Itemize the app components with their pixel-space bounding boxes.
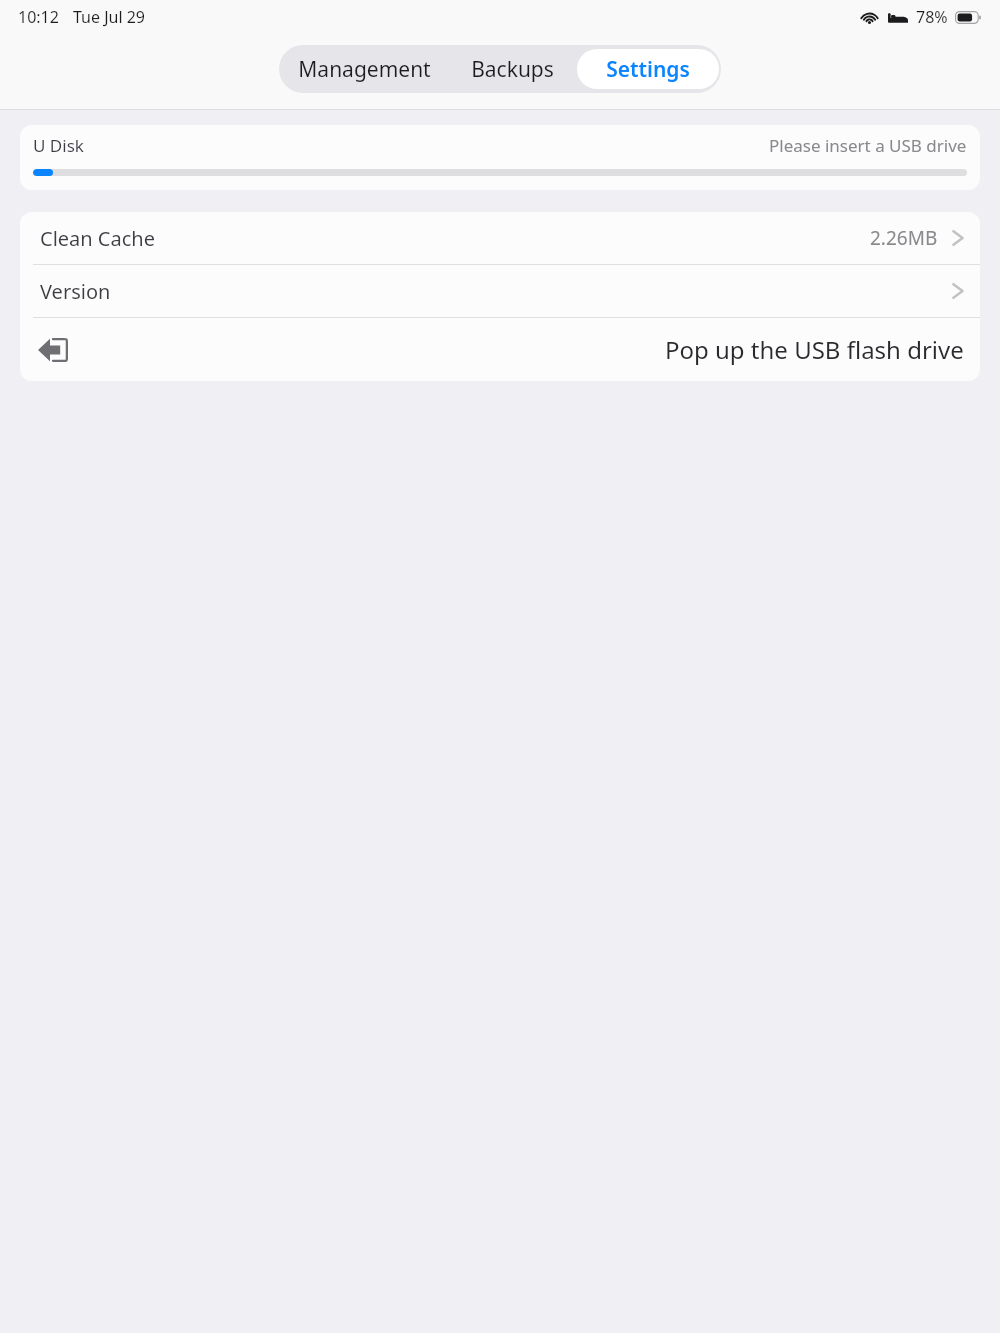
staticText: 2.26MB <box>870 225 938 251</box>
staticText: Clean Cache <box>40 225 155 252</box>
staticText: Please insert a USB drive <box>769 134 967 157</box>
staticText: Version <box>40 278 111 305</box>
button[interactable]: Management <box>279 47 449 91</box>
button[interactable]: Version <box>20 265 980 317</box>
staticText: Pop up the USB flash drive <box>665 333 964 366</box>
button[interactable]: Clean Cache <box>20 212 980 264</box>
staticText: 78% <box>916 6 948 28</box>
staticText: U Disk <box>33 134 84 157</box>
staticText: Tue Jul 29 <box>73 6 146 28</box>
button[interactable]: Eject USB flash drive <box>20 318 980 381</box>
button[interactable]: Settings <box>577 49 719 89</box>
other: Eject USB flash drive <box>36 333 70 367</box>
staticText: Backups <box>471 55 554 84</box>
staticText: Management <box>298 55 431 84</box>
staticText: 10:12 <box>18 6 59 28</box>
button[interactable]: Backups <box>449 47 575 91</box>
staticText: Settings <box>606 55 690 84</box>
